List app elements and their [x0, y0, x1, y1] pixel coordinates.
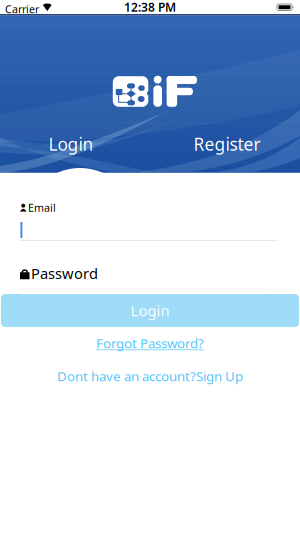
button[interactable]: Login	[1, 294, 299, 327]
button[interactable]: Login	[0, 131, 146, 157]
staticText: Dont have an account?Sign Up	[57, 367, 243, 385]
button[interactable]: Register	[152, 131, 300, 157]
staticText: Carrier	[5, 2, 39, 16]
staticText: Login	[130, 301, 169, 320]
staticText: 12:38 PM	[124, 0, 176, 15]
staticText: Login	[48, 132, 93, 155]
staticText: Register	[193, 132, 260, 155]
button[interactable]: Dont have an account?Sign Up	[0, 368, 300, 384]
staticText: Email	[28, 200, 56, 215]
staticText: Password	[31, 263, 98, 283]
button[interactable]: Forgot Password?	[0, 335, 300, 351]
staticText: Forgot Password?	[96, 334, 204, 352]
